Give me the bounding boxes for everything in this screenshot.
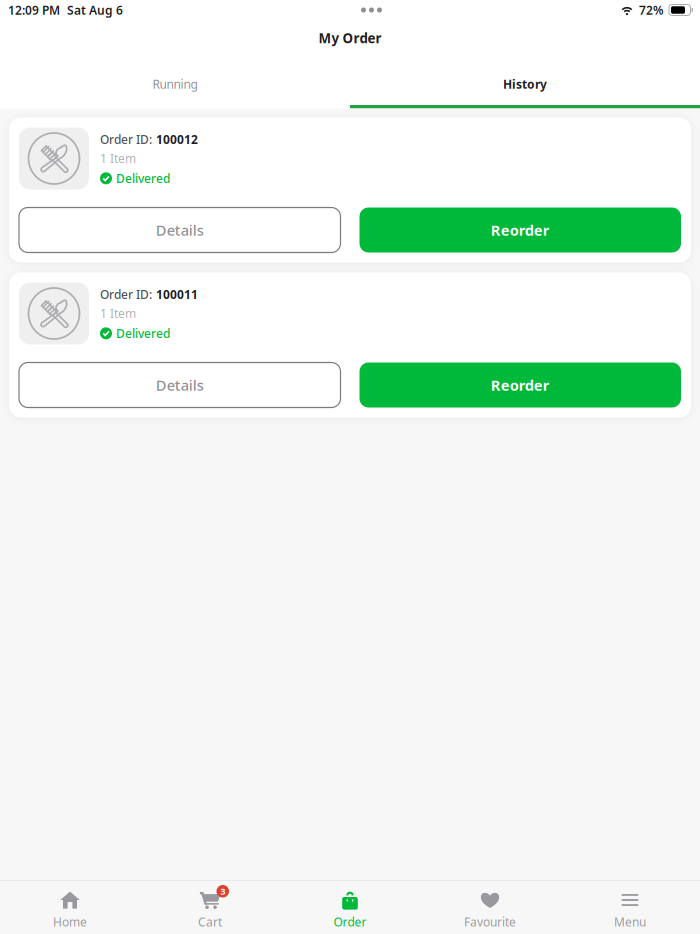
staticText: Order [333, 914, 366, 930]
staticText: Home [53, 914, 87, 930]
button[interactable]: Favourite [420, 890, 560, 930]
staticText: 100011 [156, 286, 198, 302]
staticText: Delivered [116, 325, 170, 341]
button[interactable]: Menu [560, 890, 700, 930]
button[interactable]: Reorder [359, 362, 681, 407]
staticText: Running [152, 76, 197, 92]
button[interactable]: Running [0, 56, 350, 108]
staticText: 100012 [156, 131, 198, 147]
staticText: Details [156, 220, 204, 240]
staticText: 12:09 PM [8, 2, 60, 18]
button[interactable]: Details [19, 207, 340, 252]
staticText: Sat Aug 6 [67, 2, 123, 18]
button[interactable]: 3 [140, 890, 280, 930]
button[interactable]: Order [280, 890, 420, 930]
staticText: Order ID: [100, 286, 152, 302]
button[interactable]: Home [0, 890, 140, 930]
button[interactable]: Reorder [359, 207, 681, 252]
staticText: 72% [639, 2, 664, 18]
staticText: History [503, 76, 547, 92]
staticText: 1 Item [100, 150, 136, 166]
staticText: Details [156, 375, 204, 395]
button[interactable]: History [350, 56, 700, 108]
staticText: Cart [198, 914, 222, 930]
staticText: 1 Item [100, 305, 136, 321]
button[interactable]: Details [19, 362, 340, 407]
staticText: Reorder [491, 375, 550, 395]
staticText: Order ID: [100, 131, 152, 147]
staticText: 3 [220, 885, 225, 897]
staticText: Favourite [464, 914, 516, 930]
staticText: My Order [318, 29, 381, 47]
staticText: Reorder [491, 220, 550, 240]
staticText: Menu [614, 914, 646, 930]
staticText: Delivered [116, 170, 170, 186]
